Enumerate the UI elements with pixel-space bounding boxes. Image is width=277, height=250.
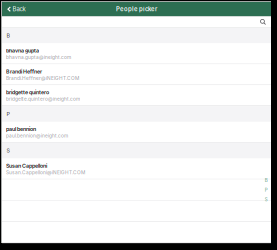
staticText: bridgette quintero (6, 89, 49, 96)
staticText: bhavna.gupta@ineight.com (6, 54, 71, 60)
button[interactable]: Back (2, 2, 28, 16)
button[interactable]: S (265, 197, 268, 202)
staticText: P (7, 111, 10, 117)
staticText: bridgette.quintero@ineight.com (6, 96, 80, 102)
button[interactable]: bridgette quintero (2, 85, 271, 106)
staticText: P (265, 187, 268, 193)
staticText: S (265, 197, 268, 202)
staticText: Brandi.Heffner@iNEIGHT.COM (6, 75, 79, 81)
staticText: Brandi Heffner (6, 68, 42, 75)
staticText: People picker (116, 6, 157, 13)
button[interactable]: B (265, 178, 268, 183)
staticText: Back (12, 5, 25, 13)
staticText: bhavna gupta (6, 47, 39, 54)
button[interactable]: Susan Cappelloni (2, 159, 271, 179)
staticText: paul bennion (6, 126, 36, 132)
button[interactable]: paul bennion (2, 122, 271, 143)
button[interactable]: Search (260, 17, 271, 27)
staticText: B (265, 178, 268, 183)
staticText: Susan.Cappelloni@iNEIGHT.COM (6, 170, 85, 175)
button[interactable]: bhavna gupta (2, 43, 271, 64)
button[interactable]: P (265, 187, 268, 193)
button[interactable]: Brandi Heffner (2, 64, 271, 85)
staticText: Susan Cappelloni (6, 163, 47, 169)
staticText: paul.bennion@ineight.com (6, 133, 68, 139)
staticText: B (7, 32, 10, 39)
staticText: S (7, 147, 10, 154)
